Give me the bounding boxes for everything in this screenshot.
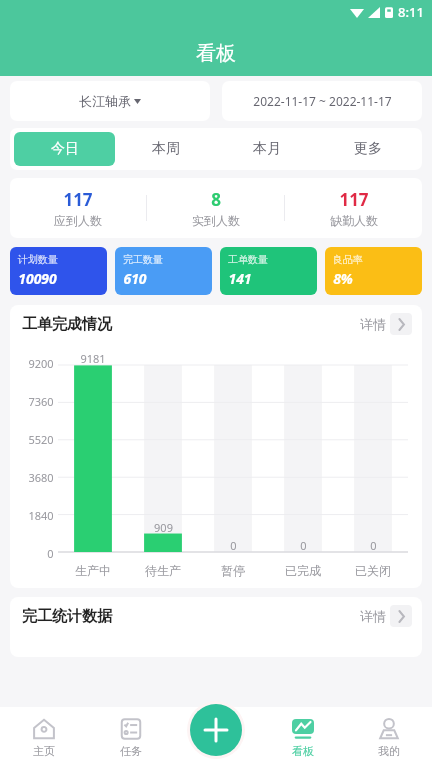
staticText: 计划数量 xyxy=(18,253,58,266)
staticText: 0 xyxy=(47,546,54,561)
staticText: 应到人数 xyxy=(54,213,102,228)
staticText: 详情 xyxy=(360,316,386,332)
staticText: 9200 xyxy=(28,356,54,371)
staticText: 已完成 xyxy=(285,563,321,578)
button[interactable]: 我的 xyxy=(346,707,432,769)
button[interactable]: Add xyxy=(190,704,242,756)
staticText: 117 xyxy=(63,188,93,211)
button[interactable]: 良品率 xyxy=(325,247,422,295)
staticText: 生产中 xyxy=(75,563,111,578)
staticText: 本月 xyxy=(253,140,281,158)
staticText: 141 xyxy=(228,269,252,288)
button[interactable]: 117 xyxy=(10,178,146,238)
staticText: 8:11 xyxy=(398,3,424,21)
button[interactable]: 8 xyxy=(147,178,284,238)
button[interactable]: 本周 xyxy=(115,132,216,166)
staticText: 任务 xyxy=(120,744,142,758)
staticText: 完工数量 xyxy=(123,253,163,266)
staticText: 实到人数 xyxy=(192,213,240,228)
button[interactable]: 看板 xyxy=(260,707,346,769)
staticText: 610 xyxy=(123,269,147,288)
staticText: 良品率 xyxy=(333,253,363,266)
button[interactable]: 2022-11-17 ~ 2022-11-17 xyxy=(222,81,422,121)
staticText: 工单数量 xyxy=(228,253,268,266)
button[interactable]: 今日 xyxy=(14,132,115,166)
staticText: 117 xyxy=(339,188,369,211)
button[interactable]: 主页 xyxy=(0,707,87,769)
staticText: 今日 xyxy=(51,140,79,158)
staticText: 909 xyxy=(154,520,173,535)
staticText: 3680 xyxy=(28,470,54,485)
button[interactable]: 计划数量 xyxy=(10,247,107,295)
button[interactable]: 完工数量 xyxy=(115,247,212,295)
staticText: 8 xyxy=(211,188,221,211)
staticText: 详情 xyxy=(360,608,386,624)
staticText: 主页 xyxy=(33,744,55,758)
staticText: 待生产 xyxy=(145,563,181,578)
staticText: 长江轴承 xyxy=(79,93,131,109)
staticText: 5520 xyxy=(28,432,54,447)
staticText: 2022-11-17 ~ 2022-11-17 xyxy=(253,93,392,109)
staticText: 1840 xyxy=(28,508,54,523)
button[interactable]: 工单数量 xyxy=(220,247,317,295)
button[interactable]: 更多 xyxy=(317,132,418,166)
staticText: 缺勤人数 xyxy=(330,213,378,228)
staticText: 已关闭 xyxy=(355,563,391,578)
staticText: 7360 xyxy=(28,394,54,409)
staticText: 8% xyxy=(333,269,353,288)
staticText: 9181 xyxy=(80,351,106,366)
button[interactable]: 详情 xyxy=(360,605,412,627)
staticText: 看板 xyxy=(292,744,314,758)
staticText: 更多 xyxy=(354,140,382,158)
staticText: 看板 xyxy=(196,41,236,66)
staticText: 暂停 xyxy=(221,563,245,578)
staticText: 工单完成情况 xyxy=(22,315,112,334)
staticText: 0 xyxy=(300,538,307,552)
button[interactable]: 详情 xyxy=(360,313,412,335)
staticText: 完工统计数据 xyxy=(22,607,112,626)
staticText: 10090 xyxy=(18,269,57,288)
staticText: 0 xyxy=(370,538,377,552)
staticText: 本周 xyxy=(152,140,180,158)
staticText: 我的 xyxy=(378,744,400,758)
button[interactable]: 本月 xyxy=(216,132,317,166)
button[interactable]: 任务 xyxy=(87,707,174,769)
button[interactable]: 117 xyxy=(285,178,422,238)
staticText: 0 xyxy=(230,538,237,552)
button[interactable]: 长江轴承 xyxy=(10,81,210,121)
